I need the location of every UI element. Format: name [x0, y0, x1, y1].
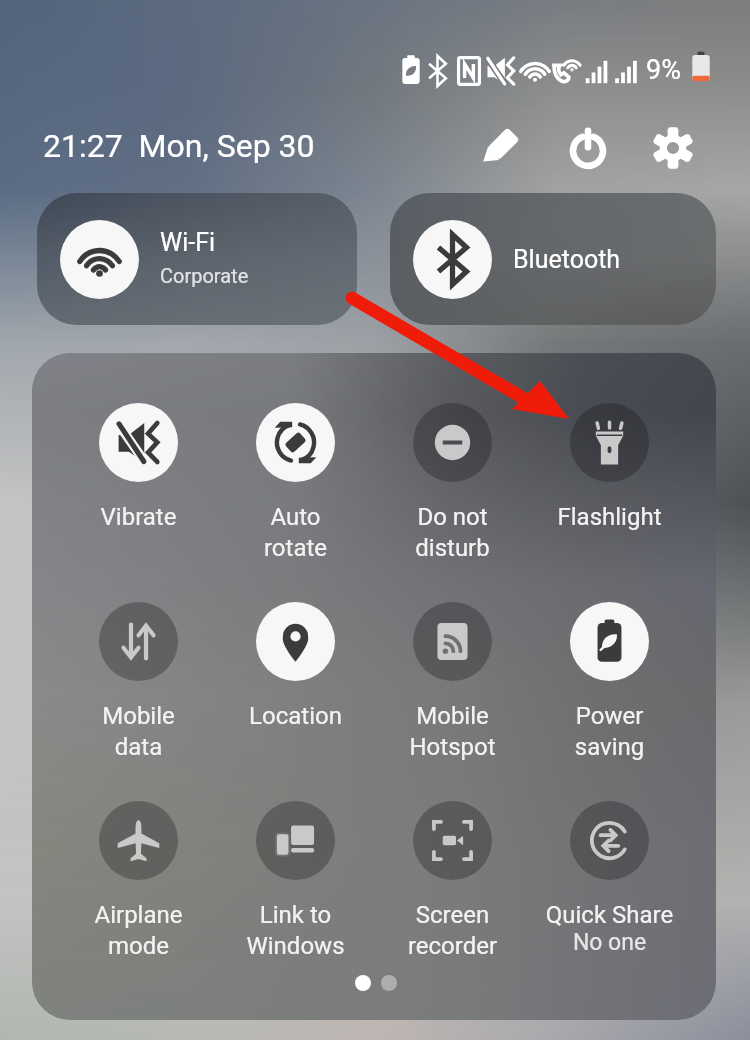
- staticText: Link to Windows: [217, 901, 374, 960]
- button[interactable]: Quick Share: [531, 801, 688, 956]
- button[interactable]: Mobile data: [60, 602, 217, 761]
- staticText: Corporate: [160, 264, 249, 287]
- staticText: 9%: [646, 54, 681, 86]
- button[interactable]: Auto rotate: [217, 403, 374, 562]
- staticText: Mobile data: [60, 702, 217, 761]
- staticText: Do not disturb: [374, 503, 531, 562]
- button[interactable]: Power: [558, 118, 618, 178]
- staticText: Wi-Fi: [160, 228, 216, 257]
- staticText: Auto rotate: [217, 503, 374, 562]
- staticText: Airplane mode: [60, 901, 217, 960]
- staticText: Location: [217, 702, 374, 730]
- button[interactable]: Link to Windows: [217, 801, 374, 960]
- button[interactable]: Airplane mode: [60, 801, 217, 960]
- staticText: Flashlight: [531, 503, 688, 531]
- button[interactable]: Bluetooth: [390, 193, 716, 325]
- button[interactable]: Wi-Fi: [37, 193, 357, 325]
- button[interactable]: Screen recorder: [374, 801, 531, 960]
- staticText: Vibrate: [60, 503, 217, 531]
- button[interactable]: Flashlight: [531, 403, 688, 531]
- button[interactable]: Settings: [643, 118, 703, 178]
- staticText: Quick Share: [531, 901, 688, 929]
- staticText: No one: [531, 929, 688, 956]
- button[interactable]: Do not disturb: [374, 403, 531, 562]
- staticText: Bluetooth: [513, 245, 621, 274]
- staticText: Mobile Hotspot: [374, 702, 531, 761]
- button[interactable]: Location: [217, 602, 374, 730]
- button[interactable]: Mobile Hotspot: [374, 602, 531, 761]
- button[interactable]: Power saving: [531, 602, 688, 761]
- button[interactable]: Edit: [470, 118, 530, 178]
- staticText: Screen recorder: [374, 901, 531, 960]
- staticText: Power saving: [531, 702, 688, 761]
- button[interactable]: Vibrate: [60, 403, 217, 531]
- staticText: 21:27 Mon, Sep 30: [43, 127, 315, 165]
